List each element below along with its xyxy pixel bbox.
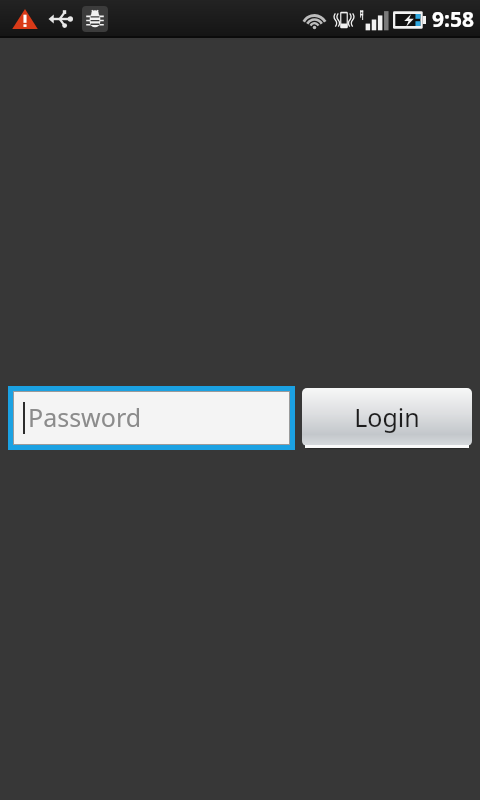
staticText: 9:58: [432, 5, 474, 34]
staticText: Login: [354, 400, 420, 434]
staticText: Password: [28, 400, 142, 434]
button[interactable]: Login: [302, 388, 472, 446]
button[interactable]: Password input: [8, 386, 295, 450]
